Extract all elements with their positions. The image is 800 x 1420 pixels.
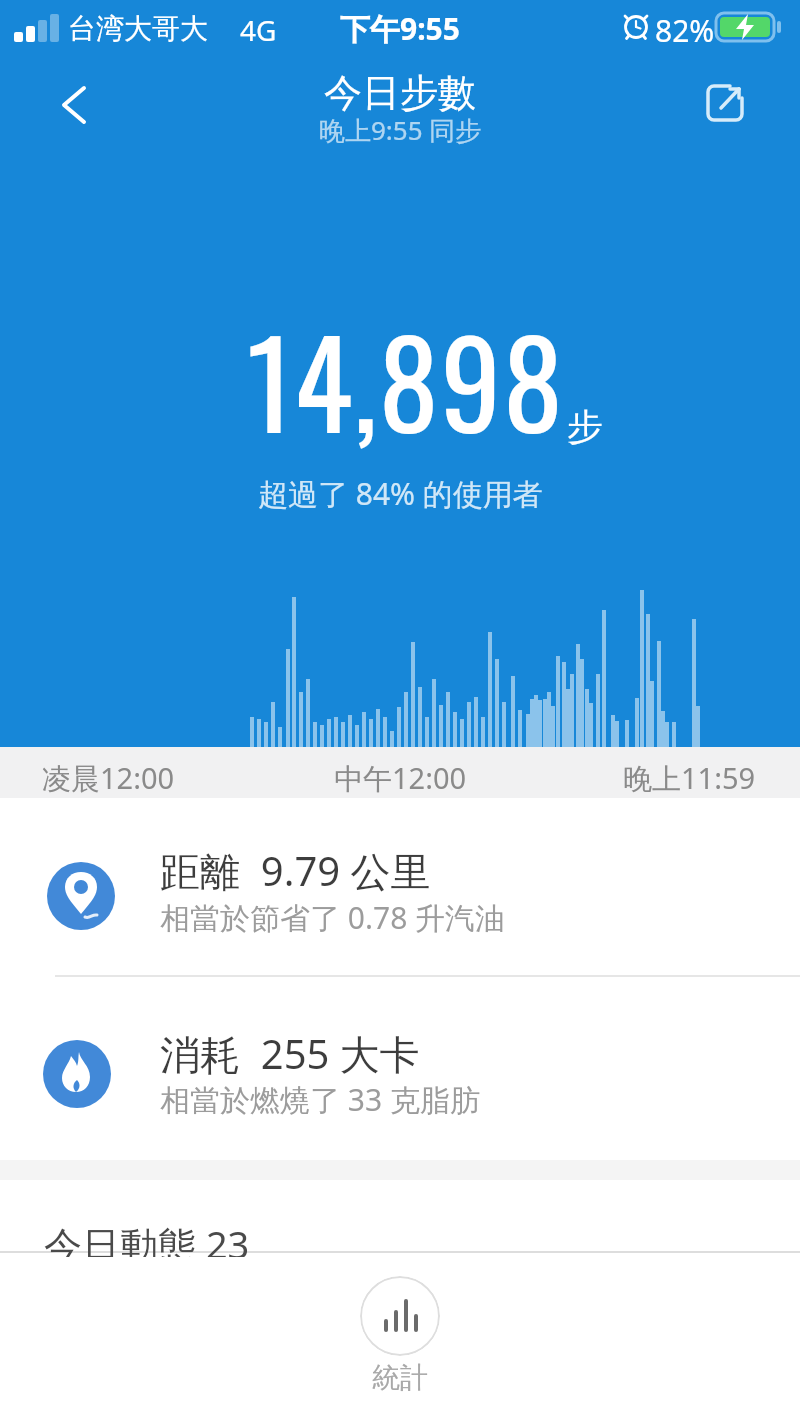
staticText: 凌晨12:00 bbox=[42, 758, 175, 798]
staticText: 14,898 bbox=[247, 290, 565, 468]
staticText: 相當於節省了 0.78 升汽油 bbox=[160, 897, 506, 938]
staticText: 超過了 84% 的使用者 bbox=[258, 473, 543, 514]
button[interactable] bbox=[360, 1276, 440, 1356]
staticText: 今日動態 23 bbox=[44, 1218, 250, 1270]
staticText: 步 bbox=[567, 404, 603, 449]
staticText: 晚上11:59 bbox=[623, 758, 756, 798]
staticText: 相當於燃燒了 33 克脂肪 bbox=[160, 1079, 480, 1120]
staticText: 消耗 255 大卡 bbox=[160, 1026, 420, 1081]
staticText: 晚上9:55 同步 bbox=[319, 112, 482, 148]
staticText: 4G bbox=[240, 11, 277, 49]
staticText: 距離 9.79 公里 bbox=[160, 843, 431, 898]
button[interactable] bbox=[40, 75, 100, 135]
staticText: 統計 bbox=[372, 1360, 428, 1395]
staticText: 82% bbox=[655, 10, 715, 51]
staticText: 中午12:00 bbox=[334, 758, 467, 798]
staticText: 今日步數 bbox=[324, 69, 476, 117]
staticText: 台湾大哥大 bbox=[68, 11, 208, 46]
button[interactable] bbox=[694, 72, 754, 132]
button[interactable] bbox=[0, 798, 800, 975]
button[interactable] bbox=[0, 977, 800, 1157]
staticText: 下午9:55 bbox=[340, 8, 460, 49]
